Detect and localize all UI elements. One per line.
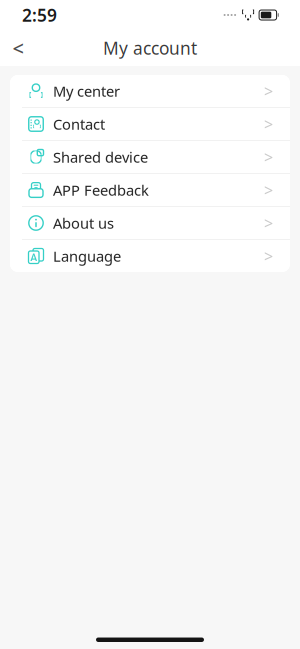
button[interactable]: Back [5, 33, 31, 63]
staticText: > [264, 80, 273, 102]
staticText: Language [53, 246, 121, 266]
staticText: > [264, 146, 273, 168]
staticText: My center [53, 81, 120, 101]
staticText: Shared device [53, 147, 148, 167]
staticText: < [12, 35, 23, 61]
staticText: > [264, 179, 273, 201]
button[interactable]: My center [10, 75, 290, 107]
staticText: 2:59 [22, 3, 57, 26]
button[interactable]: Shared device [10, 141, 290, 173]
button[interactable]: About us [10, 207, 290, 239]
staticText: A [30, 250, 37, 264]
staticText: > [264, 212, 273, 234]
button[interactable]: A [10, 240, 290, 272]
staticText: APP Feedback [53, 180, 149, 200]
button[interactable]: Contact [10, 108, 290, 140]
staticText: Contact [53, 114, 105, 134]
button[interactable]: APP Feedback [10, 174, 290, 206]
staticText: My account [103, 36, 197, 59]
staticText: > [264, 113, 273, 135]
staticText: About us [53, 213, 114, 233]
staticText: > [264, 245, 273, 267]
